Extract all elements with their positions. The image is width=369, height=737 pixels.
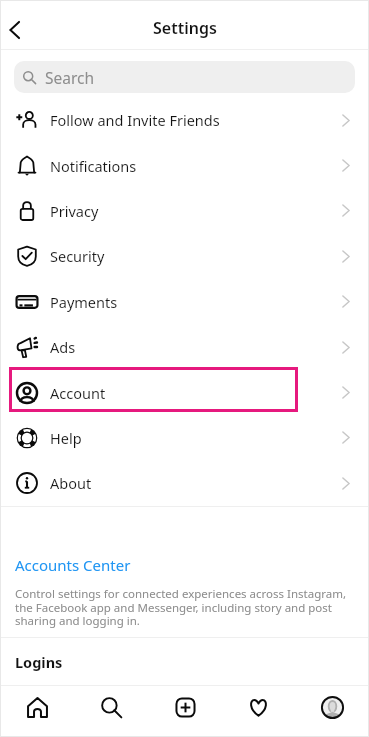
- button[interactable]: Account: [0, 370, 369, 415]
- button[interactable]: Security: [0, 233, 369, 279]
- staticText: Payments: [50, 292, 118, 312]
- staticText: Notifications: [50, 156, 137, 176]
- button[interactable]: Help: [0, 415, 369, 460]
- button[interactable]: Privacy: [0, 188, 369, 233]
- button[interactable]: Create: [161, 686, 209, 736]
- button[interactable]: Search: [14, 61, 355, 93]
- button[interactable]: Follow and Invite Friends: [0, 97, 369, 143]
- button[interactable]: About: [0, 460, 369, 506]
- staticText: Ads: [50, 337, 76, 357]
- staticText: Privacy: [50, 201, 99, 221]
- staticText: Help: [50, 428, 82, 448]
- staticText: About: [50, 473, 92, 493]
- button[interactable]: Notifications: [0, 143, 369, 188]
- button[interactable]: Profile: [308, 686, 356, 736]
- staticText: Account: [50, 383, 106, 403]
- staticText: Search: [45, 67, 95, 88]
- staticText: Control settings for connected experienc…: [15, 586, 351, 628]
- button[interactable]: Ads: [0, 324, 369, 370]
- button[interactable]: Accounts Center: [15, 555, 131, 575]
- button[interactable]: Search: [87, 686, 135, 736]
- button[interactable]: Payments: [0, 279, 369, 324]
- button[interactable]: Back: [0, 4, 44, 48]
- button[interactable]: Activity: [234, 686, 282, 736]
- button[interactable]: Home: [13, 686, 61, 736]
- staticText: Settings: [153, 17, 217, 39]
- staticText: Follow and Invite Friends: [50, 110, 220, 130]
- staticText: Logins: [15, 652, 63, 672]
- staticText: Security: [50, 246, 105, 266]
